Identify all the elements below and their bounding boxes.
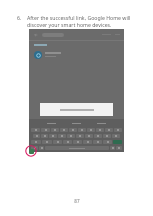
button[interactable]: Key [110,146,115,150]
button[interactable]: Key [93,140,102,144]
button[interactable]: Key [112,134,120,138]
button[interactable]: Key [33,134,40,138]
button[interactable]: Key [53,140,62,144]
button[interactable]: Key [67,134,75,138]
button[interactable]: Key [103,140,112,144]
button[interactable]: Key [94,134,102,138]
button[interactable]: Key [42,140,52,144]
button[interactable]: Key [85,134,93,138]
button[interactable] [40,103,113,116]
button[interactable]: Key [116,146,122,150]
staticText: discover your smart home devices. [27,21,112,28]
button[interactable]: Key [103,134,111,138]
staticText: After the successful link, Google Home w… [27,14,131,21]
button[interactable]: Key [49,134,57,138]
button[interactable]: Key [83,140,92,144]
button[interactable]: Space [45,146,109,150]
button[interactable]: Key [31,140,41,144]
button[interactable]: Back [33,32,39,38]
button[interactable]: Key [78,128,86,132]
staticText: 6. [17,14,22,21]
button[interactable]: Key [41,134,48,138]
button[interactable]: Annotation marker [25,145,37,157]
button[interactable]: Key [31,128,40,132]
button[interactable]: Key [105,128,113,132]
button[interactable]: Key [73,140,82,144]
button[interactable]: Key [58,134,66,138]
button[interactable]: Key [63,140,72,144]
button[interactable]: Key [41,128,50,132]
button[interactable]: Key [76,134,84,138]
button[interactable]: Key [51,128,59,132]
button[interactable]: Key [31,146,38,150]
button[interactable]: Key [60,128,68,132]
button[interactable]: Key [87,128,95,132]
button[interactable]: Key [39,146,44,150]
staticText: 87 [74,198,80,204]
button[interactable]: Key [96,128,104,132]
button[interactable]: Key [69,128,77,132]
button[interactable] [34,49,119,60]
button[interactable]: Key [114,128,122,132]
